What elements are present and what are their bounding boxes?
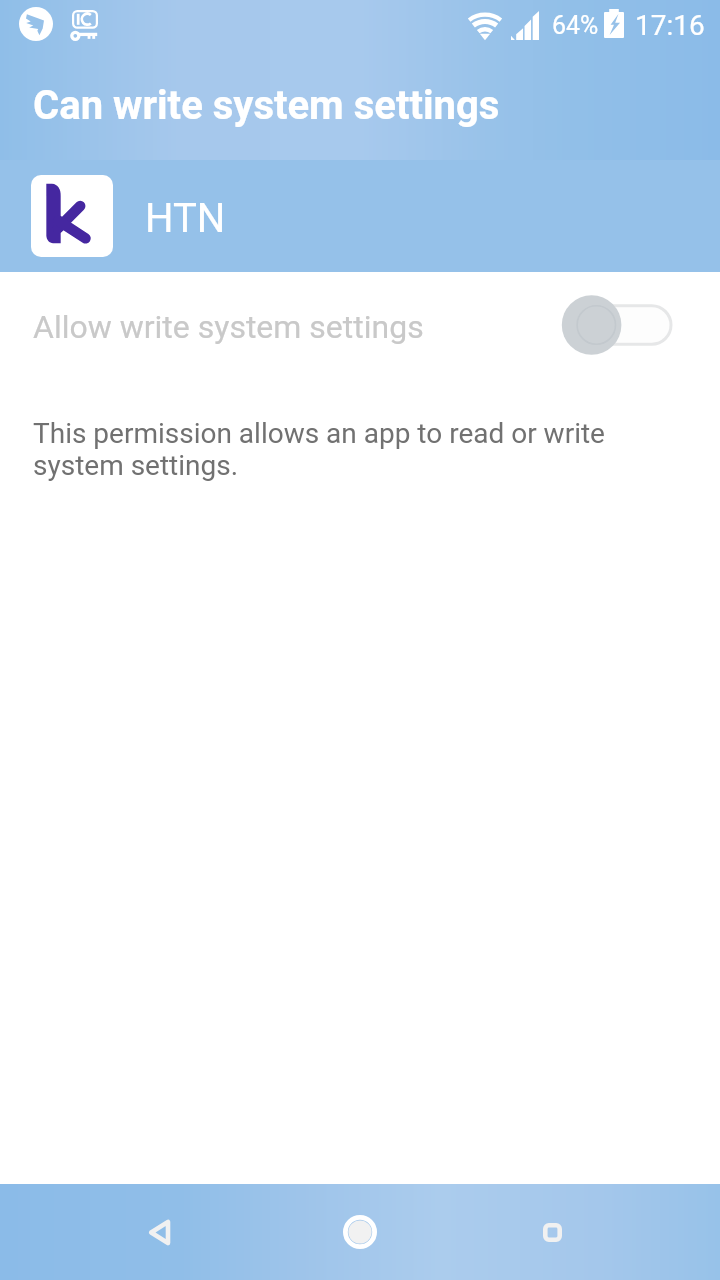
staticText: Can write system settings [33,82,500,129]
staticText: This permission allows an app to read or… [33,417,668,482]
button[interactable]: Home [324,1196,396,1268]
button[interactable]: Recent apps [516,1196,588,1268]
staticText: 17:16 [635,9,705,42]
button[interactable]: Allow write system settings [561,290,681,360]
staticText: HTN [145,195,226,242]
button[interactable]: Allow write system settings [0,272,720,377]
button[interactable]: Back [124,1196,196,1268]
staticText: Allow write system settings [33,308,424,346]
staticText: 64% [552,11,599,40]
